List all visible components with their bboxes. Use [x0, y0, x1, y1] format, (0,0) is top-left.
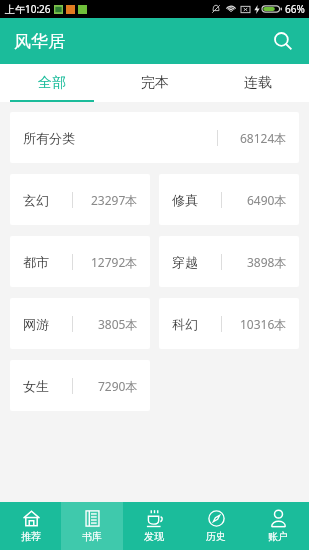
- button[interactable]: 推荐: [0, 502, 61, 550]
- staticText: 玄幻: [23, 192, 49, 208]
- staticText: 连载: [244, 74, 272, 92]
- staticText: 66%: [285, 2, 305, 16]
- staticText: 风华居: [14, 31, 65, 52]
- button[interactable]: 全部: [0, 64, 103, 102]
- button[interactable]: 修真: [159, 174, 299, 225]
- staticText: 历史: [206, 530, 226, 543]
- staticText: 12792本: [91, 254, 138, 270]
- staticText: 所有分类: [23, 130, 75, 146]
- staticText: 完本: [141, 74, 169, 92]
- button[interactable]: 连载: [206, 64, 309, 102]
- staticText: 3898本: [247, 254, 287, 270]
- staticText: 3805本: [98, 316, 138, 332]
- staticText: 6490本: [247, 192, 287, 208]
- staticText: 账户: [268, 530, 288, 543]
- button[interactable]: 都市: [10, 236, 150, 287]
- button[interactable]: 网游: [10, 298, 150, 349]
- button[interactable]: 历史: [185, 502, 247, 550]
- staticText: 推荐: [21, 530, 41, 543]
- staticText: 全部: [38, 74, 66, 92]
- button[interactable]: 账户: [247, 502, 309, 550]
- button[interactable]: 穿越: [159, 236, 299, 287]
- button[interactable]: 女生: [10, 360, 150, 411]
- button[interactable]: 所有分类: [10, 112, 299, 163]
- staticText: 7290本: [98, 378, 138, 394]
- button[interactable]: 完本: [103, 64, 206, 102]
- staticText: 10316本: [240, 316, 287, 332]
- staticText: 修真: [172, 192, 198, 208]
- staticText: 女生: [23, 378, 49, 394]
- button[interactable]: 发现: [123, 502, 185, 550]
- button[interactable]: 书库: [61, 502, 123, 550]
- staticText: 都市: [23, 254, 49, 270]
- button[interactable]: 玄幻: [10, 174, 150, 225]
- staticText: 穿越: [172, 254, 198, 270]
- staticText: 68124本: [240, 130, 287, 146]
- staticText: 23297本: [91, 192, 138, 208]
- staticText: 书库: [82, 530, 102, 543]
- button[interactable]: Search: [265, 23, 301, 59]
- staticText: 上午10:26: [5, 2, 51, 16]
- staticText: 科幻: [172, 316, 198, 332]
- button[interactable]: 科幻: [159, 298, 299, 349]
- staticText: 发现: [144, 530, 164, 543]
- staticText: 网游: [23, 316, 49, 332]
